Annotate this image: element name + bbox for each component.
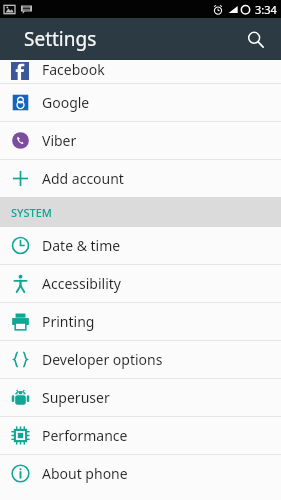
button[interactable]: Search <box>238 22 272 56</box>
staticText: Google <box>42 93 90 112</box>
button[interactable]: Superuser <box>0 379 281 416</box>
button[interactable]: About phone <box>0 455 281 492</box>
staticText: About phone <box>42 464 128 483</box>
button[interactable]: Developer options <box>0 341 281 378</box>
button[interactable]: Facebook <box>0 60 281 83</box>
staticText: Printing <box>42 312 95 331</box>
button[interactable]: Google <box>0 84 281 121</box>
staticText: Add account <box>42 169 124 188</box>
staticText: Performance <box>42 426 128 445</box>
staticText: Developer options <box>42 350 163 369</box>
button[interactable]: Accessibility <box>0 265 281 302</box>
button[interactable]: Add account <box>0 160 281 197</box>
button[interactable]: Viber <box>0 122 281 159</box>
staticText: Settings <box>24 26 97 52</box>
button[interactable]: Date & time <box>0 227 281 264</box>
staticText: Accessibility <box>42 274 121 293</box>
staticText: Viber <box>42 131 77 150</box>
staticText: 3:34 <box>255 2 277 17</box>
button[interactable]: Printing <box>0 303 281 340</box>
staticText: Facebook <box>42 60 105 79</box>
staticText: Superuser <box>42 388 110 407</box>
staticText: Date & time <box>42 236 121 255</box>
button[interactable]: Performance <box>0 417 281 454</box>
staticText: SYSTEM <box>11 205 52 220</box>
